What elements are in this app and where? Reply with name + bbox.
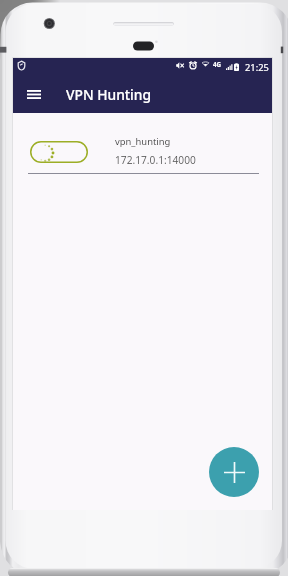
button[interactable]: vpn_hunting [13,132,272,172]
staticText: 4G [213,60,222,68]
button[interactable]: Add VPN [209,447,259,497]
staticText: VPN Hunting [66,85,152,104]
staticText: 21:25 [245,61,269,74]
staticText: 172.17.0.1:14000 [115,153,196,167]
staticText: vpn_hunting [115,135,171,148]
button[interactable]: Open navigation menu [20,80,48,108]
